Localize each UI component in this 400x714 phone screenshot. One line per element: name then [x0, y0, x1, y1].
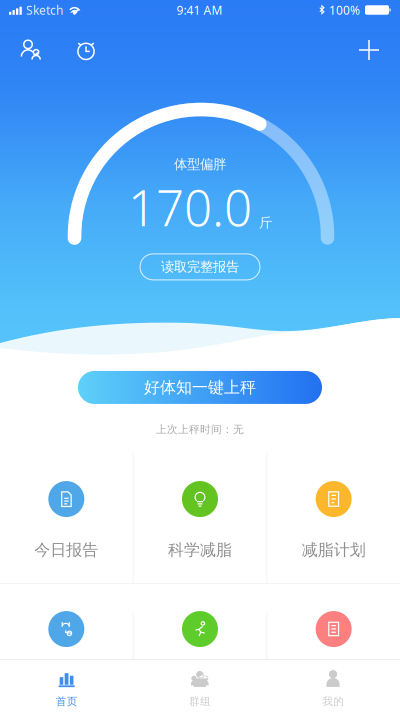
button[interactable]: 首页: [0, 659, 133, 714]
button[interactable]: 健康评估: [0, 584, 133, 713]
staticText: Sketch: [26, 2, 63, 18]
staticText: 今日报告: [34, 540, 98, 560]
staticText: 运动计划: [168, 670, 232, 690]
staticText: 100%: [329, 2, 360, 18]
button[interactable]: 群组: [133, 659, 267, 714]
staticText: 体型偏胖: [174, 156, 226, 172]
button[interactable]: 运动计划: [134, 584, 266, 713]
button[interactable]: Friends: [13, 32, 48, 68]
staticText: 9:41 AM: [176, 2, 222, 18]
staticText: 减脂计划: [302, 540, 366, 560]
button[interactable]: Reminders: [68, 32, 104, 68]
staticText: 我的: [322, 695, 344, 708]
button[interactable]: 饮食记录: [267, 584, 400, 713]
staticText: 健康评估: [34, 670, 98, 690]
staticText: 170.0: [128, 174, 252, 240]
staticText: 上次上秤时间：无: [156, 423, 244, 436]
button[interactable]: 今日报告: [0, 454, 133, 583]
staticText: 读取完整报告: [161, 259, 239, 275]
staticText: 饮食记录: [302, 670, 366, 690]
button[interactable]: 好体知一键上秤: [78, 371, 322, 404]
staticText: 首页: [56, 695, 78, 708]
button[interactable]: Add: [351, 32, 387, 68]
staticText: 好体知一键上秤: [144, 378, 256, 397]
staticText: 科学减脂: [168, 540, 232, 560]
button[interactable]: 减脂计划: [267, 454, 400, 583]
staticText: 斤: [259, 214, 272, 231]
staticText: 群组: [189, 695, 211, 708]
button[interactable]: 我的: [267, 659, 400, 714]
button[interactable]: 科学减脂: [134, 454, 266, 583]
button[interactable]: 读取完整报告: [140, 254, 260, 280]
